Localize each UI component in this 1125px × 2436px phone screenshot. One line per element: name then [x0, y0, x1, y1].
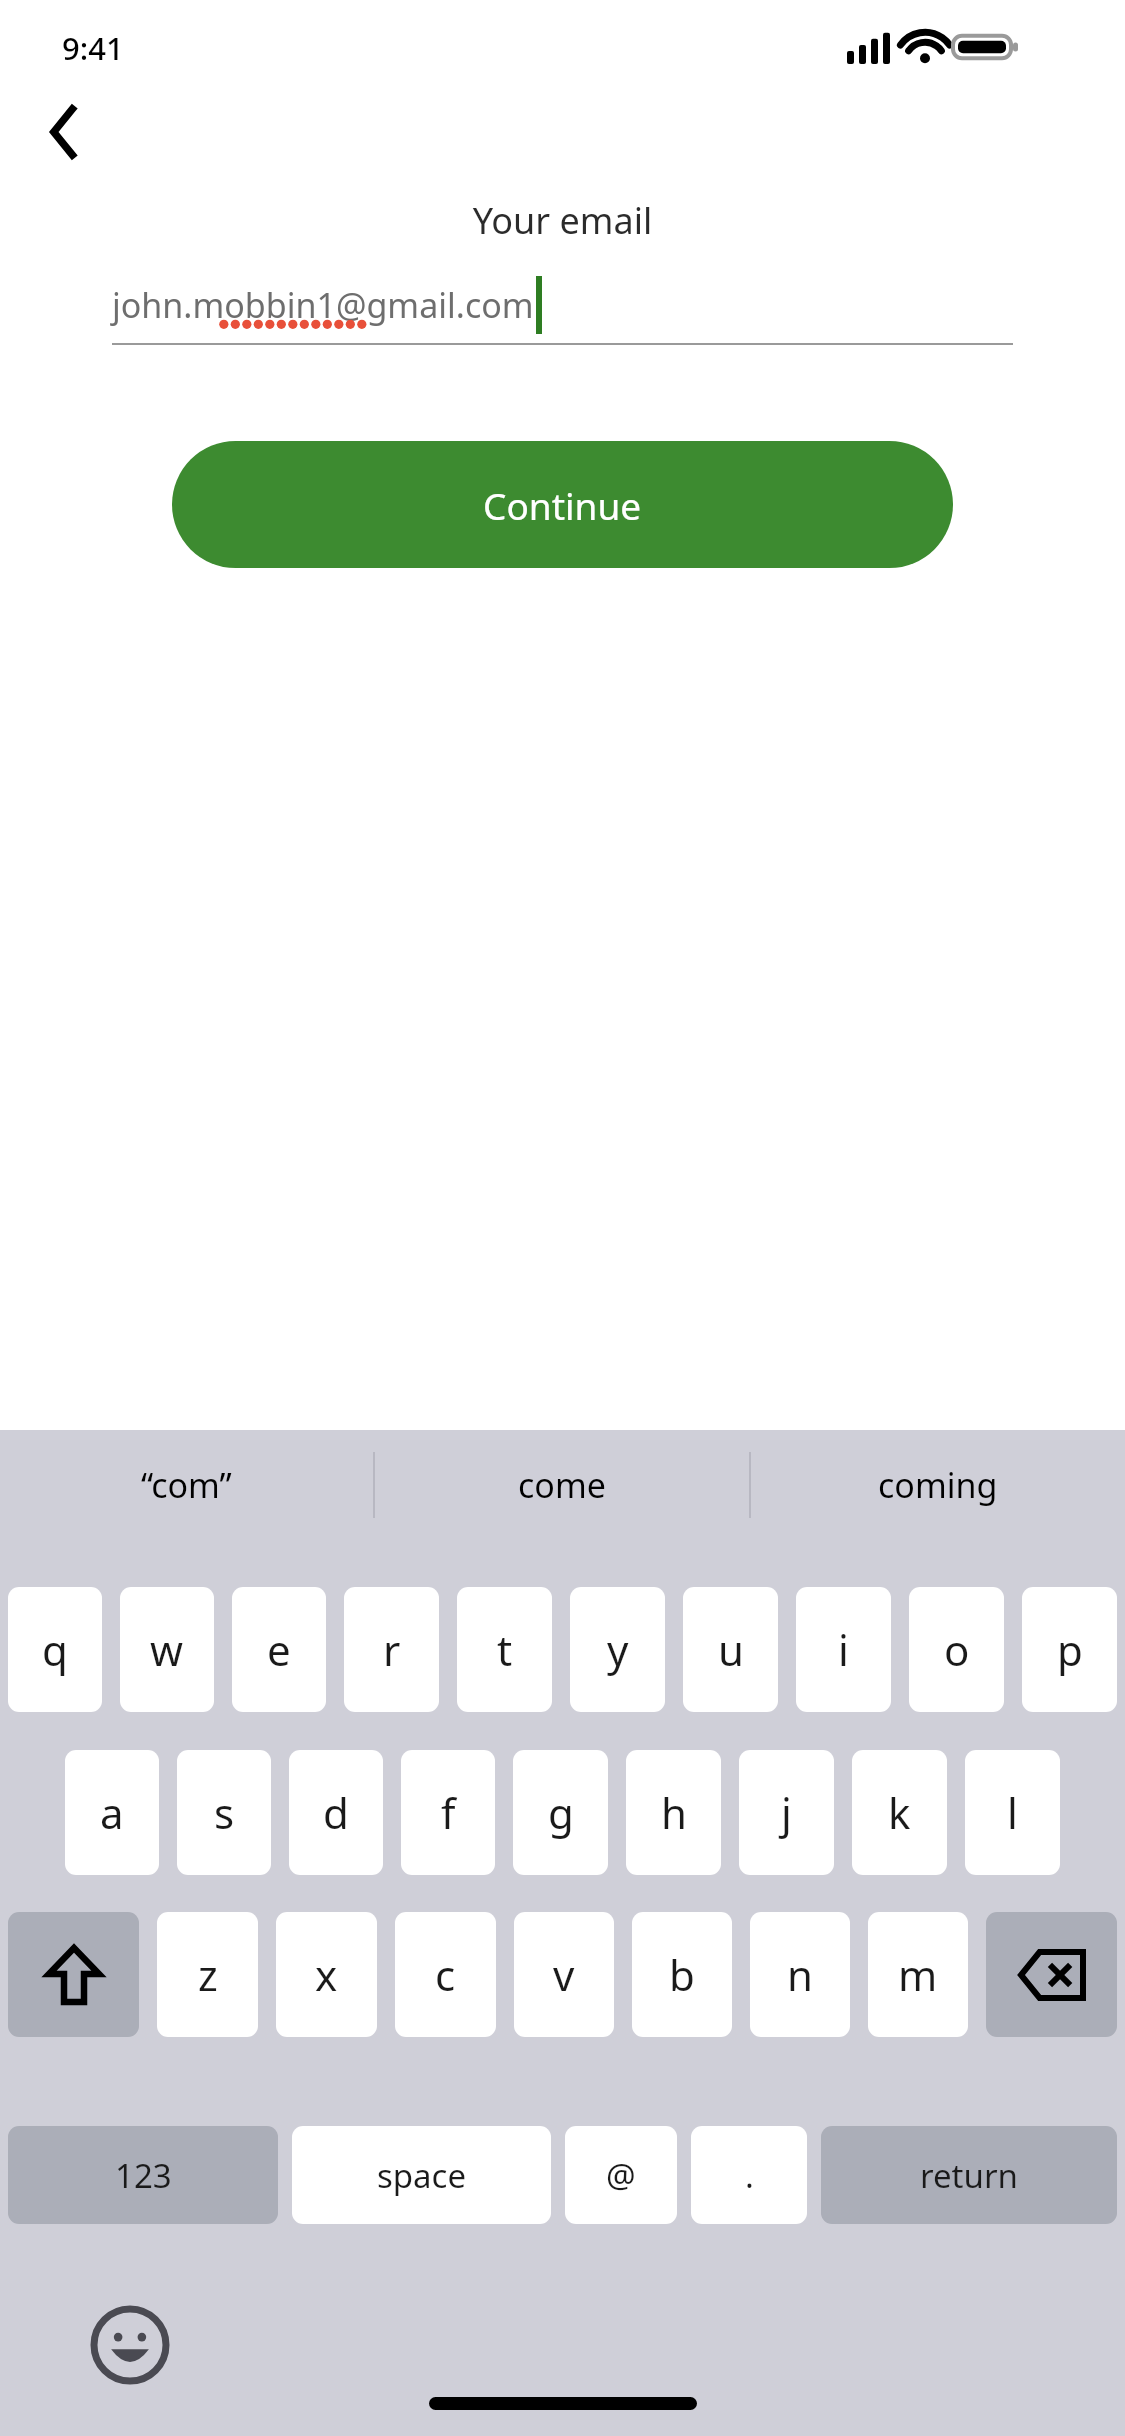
staticText: d	[323, 1784, 349, 1841]
button[interactable]: y	[570, 1587, 665, 1712]
button[interactable]: w	[120, 1587, 214, 1712]
staticText: y	[607, 1621, 629, 1678]
staticText: “com”	[141, 1462, 232, 1508]
button[interactable]: Backspace	[986, 1912, 1117, 2037]
button[interactable]: s	[177, 1750, 271, 1875]
staticText: c	[435, 1946, 456, 2003]
button[interactable]: c	[395, 1912, 496, 2037]
staticText: come	[518, 1462, 606, 1508]
staticText: f	[441, 1784, 456, 1841]
button[interactable]: t	[457, 1587, 552, 1712]
staticText: s	[214, 1784, 235, 1841]
button[interactable]: Emoji keyboard	[85, 2300, 175, 2390]
button[interactable]: john.mobbin1@gmail.com	[112, 267, 1013, 343]
staticText: space	[377, 2153, 467, 2198]
button[interactable]: a	[65, 1750, 159, 1875]
staticText: n	[787, 1946, 813, 2003]
button[interactable]: Back	[28, 96, 100, 168]
staticText: k	[888, 1784, 911, 1841]
button[interactable]: coming	[751, 1430, 1125, 1540]
button[interactable]: r	[344, 1587, 439, 1712]
staticText: t	[497, 1621, 513, 1678]
button[interactable]: f	[401, 1750, 495, 1875]
staticText: o	[944, 1621, 970, 1678]
staticText: b	[669, 1946, 695, 2003]
button[interactable]: 123	[8, 2126, 278, 2224]
button[interactable]: z	[157, 1912, 258, 2037]
staticText: a	[100, 1784, 124, 1841]
button[interactable]: .	[691, 2126, 807, 2224]
button[interactable]: return	[821, 2126, 1117, 2224]
button[interactable]: d	[289, 1750, 383, 1875]
button[interactable]: m	[868, 1912, 968, 2037]
button[interactable]: come	[375, 1430, 749, 1540]
button[interactable]: n	[750, 1912, 850, 2037]
button[interactable]: @	[565, 2126, 677, 2224]
button[interactable]: p	[1022, 1587, 1117, 1712]
button[interactable]: Shift	[8, 1912, 139, 2037]
button[interactable]: j	[739, 1750, 834, 1875]
staticText: coming	[878, 1462, 998, 1508]
staticText: e	[267, 1621, 291, 1678]
staticText: r	[383, 1621, 401, 1678]
staticText: u	[718, 1621, 744, 1678]
staticText: @	[606, 2153, 636, 2198]
button[interactable]: q	[8, 1587, 102, 1712]
button[interactable]: g	[513, 1750, 608, 1875]
button[interactable]: space	[292, 2126, 551, 2224]
button[interactable]: x	[276, 1912, 377, 2037]
staticText: q	[42, 1621, 68, 1678]
button[interactable]: Continue	[172, 441, 953, 568]
button[interactable]: “com”	[0, 1430, 373, 1540]
staticText: i	[838, 1621, 849, 1678]
staticText: g	[548, 1784, 574, 1841]
staticText: p	[1057, 1621, 1083, 1678]
staticText: Your email	[0, 196, 1125, 245]
staticText: john.mobbin1@gmail.com	[112, 282, 534, 328]
staticText: v	[553, 1946, 575, 2003]
staticText: j	[781, 1784, 792, 1841]
staticText: w	[150, 1621, 184, 1678]
staticText: return	[920, 2153, 1018, 2198]
button[interactable]: l	[965, 1750, 1060, 1875]
button[interactable]: b	[632, 1912, 732, 2037]
button[interactable]: u	[683, 1587, 778, 1712]
button[interactable]: e	[232, 1587, 326, 1712]
staticText: 123	[115, 2153, 172, 2198]
staticText: h	[661, 1784, 687, 1841]
staticText: Continue	[483, 480, 642, 530]
staticText: z	[198, 1946, 218, 2003]
button[interactable]: v	[514, 1912, 614, 2037]
button[interactable]: o	[909, 1587, 1004, 1712]
staticText: l	[1007, 1784, 1018, 1841]
button[interactable]: k	[852, 1750, 947, 1875]
button[interactable]: i	[796, 1587, 891, 1712]
staticText: .	[745, 2153, 754, 2198]
staticText: m	[898, 1946, 938, 2003]
button[interactable]: h	[626, 1750, 721, 1875]
staticText: x	[315, 1946, 338, 2003]
staticText: 9:41	[62, 27, 124, 69]
